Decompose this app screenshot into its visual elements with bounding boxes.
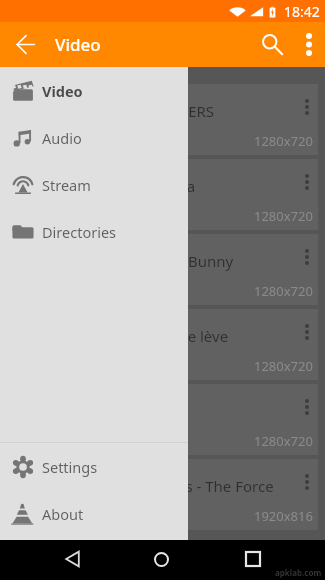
button[interactable]: Navigate up (3, 22, 48, 67)
button[interactable]: More options (297, 242, 317, 272)
staticText: 1280x720 (254, 357, 313, 375)
staticText: Star Wars - The Force (125, 476, 274, 496)
staticText: 1920x816 (254, 507, 313, 525)
staticText: About (42, 504, 84, 524)
button[interactable]: More options (297, 317, 317, 347)
button[interactable]: More options (297, 167, 317, 197)
staticText: 1280x720 (254, 432, 313, 450)
button[interactable]: Sintel trailer alpha (7, 159, 318, 230)
button[interactable]: More options (297, 92, 317, 122)
button[interactable]: Search (250, 22, 295, 67)
staticText: 1280x720 (254, 207, 313, 225)
staticText: Video (42, 81, 83, 101)
button[interactable]: BIG BUCK BUNNY TRAILERS (7, 84, 318, 155)
staticText: Video (55, 33, 101, 56)
button[interactable]: Le soleil se lève (7, 309, 318, 380)
staticText: Big Buck Bunny (123, 251, 234, 271)
staticText: 18:42 (284, 2, 320, 21)
staticText: apklab.com (275, 567, 322, 578)
staticText: Audio (42, 128, 82, 148)
button[interactable]: Settings (0, 443, 188, 490)
staticText: BIG BUCK BUNNY TRAILERS (19, 101, 215, 121)
staticText: Stream (42, 175, 91, 195)
button[interactable]: Home (142, 540, 180, 578)
button[interactable]: Tears of Steel (7, 384, 318, 455)
staticText: 1280x720 (254, 132, 313, 150)
button[interactable]: Stream (0, 161, 188, 208)
button[interactable]: More options (297, 392, 317, 422)
button[interactable]: Video (0, 67, 188, 114)
button[interactable]: Big Buck Bunny (7, 234, 318, 305)
staticText: Sintel trailer alpha (67, 176, 196, 196)
button[interactable]: More options (293, 22, 325, 67)
button[interactable]: Audio (0, 114, 188, 161)
button[interactable]: Directories (0, 208, 188, 255)
button[interactable]: Back (53, 540, 91, 578)
staticText: Settings (42, 457, 98, 477)
button[interactable]: About (0, 490, 188, 537)
button[interactable]: Star Wars - The Force (7, 459, 318, 530)
button[interactable]: More options (297, 467, 317, 497)
staticText: 1280x720 (254, 282, 313, 300)
staticText: Le soleil se lève (120, 326, 229, 346)
button[interactable]: Recent apps (234, 540, 272, 578)
staticText: Directories (42, 222, 117, 242)
